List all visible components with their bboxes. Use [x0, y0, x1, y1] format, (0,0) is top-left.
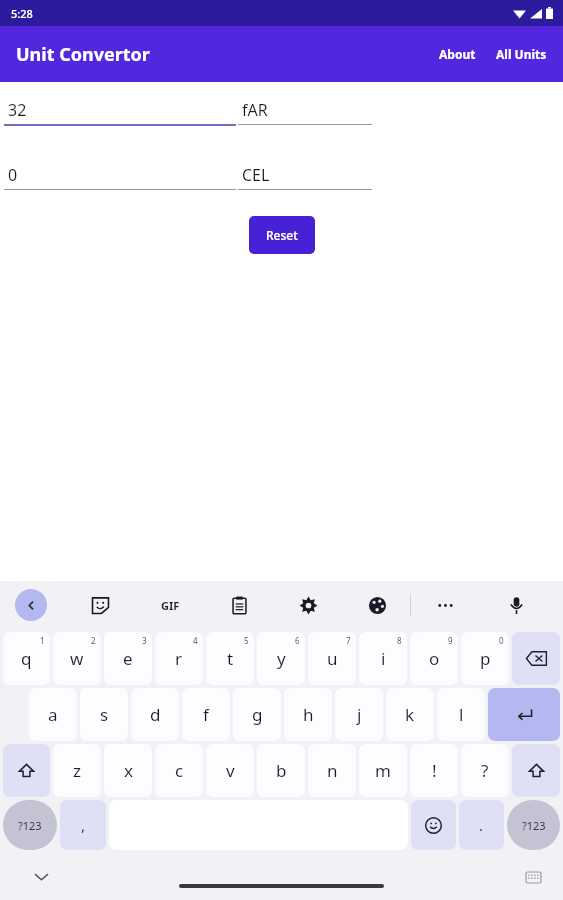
staticText: CEL — [242, 164, 270, 186]
button[interactable]: Emoji — [411, 800, 456, 850]
button[interactable]: ! — [410, 744, 458, 797]
staticText: 0 — [499, 635, 504, 646]
staticText: ?123 — [522, 818, 546, 833]
button[interactable]: ?123 — [3, 800, 57, 850]
staticText: 9 — [448, 635, 453, 646]
staticText: , — [81, 815, 86, 835]
button[interactable]: Shift — [3, 744, 50, 797]
button[interactable]: Sticker — [85, 590, 115, 620]
staticText: x — [124, 759, 133, 782]
staticText: ? — [481, 759, 489, 782]
button[interactable]: . — [459, 800, 504, 850]
button[interactable]: Back — [15, 589, 47, 621]
button[interactable]: i — [359, 632, 407, 685]
staticText: 32 — [8, 99, 27, 121]
button[interactable]: 32 — [4, 96, 236, 126]
staticText: All Units — [496, 46, 547, 62]
button[interactable]: fAR — [238, 96, 372, 125]
staticText: o — [429, 647, 440, 670]
button[interactable]: Voice input — [501, 590, 531, 620]
staticText: y — [277, 647, 286, 670]
button[interactable]: About — [429, 36, 486, 72]
button[interactable]: More options — [430, 590, 460, 620]
button[interactable]: f — [182, 688, 230, 741]
button[interactable]: o — [410, 632, 458, 685]
button[interactable]: s — [80, 688, 128, 741]
button[interactable]: d — [131, 688, 179, 741]
staticText: h — [303, 703, 314, 726]
button[interactable]: All Units — [486, 36, 563, 72]
button[interactable]: m — [359, 744, 407, 797]
button[interactable]: GIF — [155, 590, 185, 620]
button[interactable]: Settings — [293, 590, 323, 620]
staticText: b — [276, 759, 287, 782]
staticText: e — [123, 647, 133, 670]
button[interactable]: j — [335, 688, 383, 741]
button[interactable]: h — [284, 688, 332, 741]
button[interactable]: a — [29, 688, 77, 741]
staticText: g — [252, 703, 263, 726]
staticText: u — [327, 647, 338, 670]
button[interactable]: p — [461, 632, 509, 685]
staticText: s — [100, 703, 109, 726]
staticText: 7 — [346, 635, 351, 646]
button[interactable]: y — [257, 632, 305, 685]
button[interactable]: b — [257, 744, 305, 797]
staticText: j — [357, 703, 362, 726]
staticText: fAR — [242, 99, 268, 121]
staticText: 5:28 — [11, 6, 33, 21]
staticText: Unit Convertor — [16, 42, 150, 67]
button[interactable]: k — [386, 688, 434, 741]
button[interactable]: Reset — [249, 216, 315, 254]
staticText: 4 — [193, 635, 198, 646]
button[interactable]: w — [53, 632, 101, 685]
button[interactable]: q — [3, 632, 50, 685]
button[interactable]: e — [104, 632, 152, 685]
staticText: z — [73, 759, 81, 782]
staticText: i — [381, 647, 386, 670]
staticText: t — [227, 647, 234, 670]
button[interactable]: , — [60, 800, 106, 850]
staticText: f — [203, 703, 209, 726]
button[interactable]: 0 — [4, 161, 236, 190]
staticText: ?123 — [18, 818, 42, 833]
staticText: d — [150, 703, 161, 726]
button[interactable]: v — [206, 744, 254, 797]
button[interactable]: Clipboard — [224, 590, 254, 620]
staticText: 0 — [8, 164, 18, 186]
button[interactable]: ?123 — [507, 800, 560, 850]
staticText: 1 — [40, 635, 45, 646]
staticText: 6 — [295, 635, 300, 646]
staticText: 8 — [397, 635, 402, 646]
staticText: k — [405, 703, 415, 726]
button[interactable]: Enter — [488, 688, 560, 741]
staticText: q — [21, 647, 32, 670]
button[interactable]: Shift — [512, 744, 560, 797]
button[interactable]: u — [308, 632, 356, 685]
staticText: ! — [432, 759, 437, 782]
button[interactable]: g — [233, 688, 281, 741]
button[interactable]: n — [308, 744, 356, 797]
button[interactable]: CEL — [238, 161, 372, 190]
button[interactable]: ? — [461, 744, 509, 797]
staticText: n — [327, 759, 338, 782]
button[interactable]: x — [104, 744, 152, 797]
button[interactable]: t — [206, 632, 254, 685]
staticText: r — [175, 647, 183, 670]
staticText: 3 — [142, 635, 147, 646]
staticText: l — [459, 703, 464, 726]
staticText: About — [439, 46, 476, 62]
button[interactable]: Hide keyboard — [26, 862, 56, 892]
button[interactable]: l — [437, 688, 485, 741]
button[interactable]: Backspace — [512, 632, 560, 685]
button[interactable]: Theme — [362, 590, 392, 620]
staticText: 5 — [244, 635, 249, 646]
staticText: m — [375, 759, 391, 782]
button[interactable]: z — [53, 744, 101, 797]
button[interactable]: r — [155, 632, 203, 685]
staticText: . — [479, 815, 484, 835]
staticText: p — [480, 647, 491, 670]
button[interactable]: Switch keyboard — [520, 864, 546, 890]
button[interactable]: c — [155, 744, 203, 797]
